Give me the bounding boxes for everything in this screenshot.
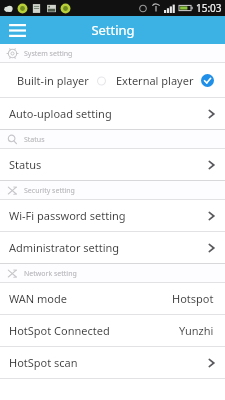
staticText: Network setting (24, 269, 77, 279)
button[interactable]: Built-in player (0, 73, 112, 88)
button[interactable]: Wi-Fi password setting (0, 200, 225, 231)
staticText: Status (24, 135, 45, 145)
staticText: Status (9, 157, 208, 172)
button[interactable]: HotSpot Connected (0, 315, 225, 346)
button[interactable]: WAN mode (0, 283, 225, 314)
staticText: External player (116, 73, 194, 88)
staticText: WAN mode (9, 291, 172, 306)
staticText: Security setting (24, 186, 75, 196)
staticText: Auto-upload setting (9, 106, 208, 121)
button[interactable]: Auto-upload setting (0, 98, 225, 129)
staticText: Wi-Fi password setting (9, 208, 208, 223)
staticText: Hotspot (172, 291, 214, 306)
button[interactable]: External player (112, 73, 225, 88)
staticText: Built-in player (17, 73, 89, 88)
staticText: 15:03 (196, 1, 222, 15)
button[interactable]: Administrator setting (0, 232, 225, 263)
staticText: Setting (91, 21, 135, 39)
staticText: HotSpot Connected (9, 323, 179, 338)
staticText: Yunzhi (179, 323, 214, 338)
staticText: HotSpot scan (9, 355, 208, 370)
button[interactable]: HotSpot scan (0, 347, 225, 378)
button[interactable]: Status (0, 149, 225, 180)
staticText: Administrator setting (9, 240, 208, 255)
staticText: System setting (24, 49, 73, 59)
button[interactable]: Open navigation menu (0, 16, 34, 44)
